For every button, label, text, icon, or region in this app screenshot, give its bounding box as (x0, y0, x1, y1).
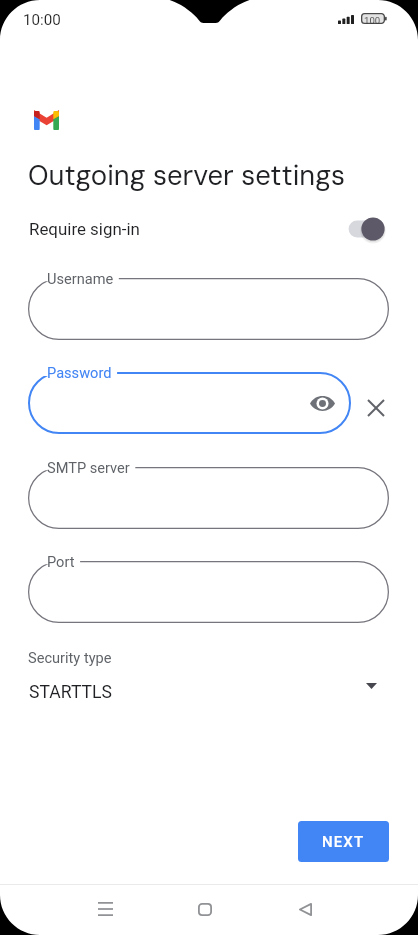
button[interactable]: Show password (307, 388, 337, 418)
staticText: Password (47, 364, 112, 381)
button[interactable]: NEXT (298, 821, 389, 862)
button[interactable]: SMTP server (28, 467, 389, 529)
button[interactable]: Require sign-in toggle (344, 213, 390, 245)
staticText: 10:00 (23, 11, 61, 29)
staticText: Username (47, 270, 114, 287)
button[interactable]: Password (28, 372, 351, 434)
button[interactable]: Port (28, 561, 389, 623)
staticText: Outgoing server settings (28, 158, 345, 194)
staticText: Security type (28, 649, 112, 666)
button[interactable]: Username (28, 278, 389, 340)
staticText: NEXT (322, 833, 365, 851)
staticText: STARTTLS (29, 682, 112, 703)
button[interactable]: Recent apps (81, 885, 129, 933)
button[interactable]: Require sign-in (20, 212, 340, 248)
staticText: Require sign-in (29, 219, 140, 239)
staticText: 100 (364, 15, 381, 26)
button[interactable]: Clear password (362, 394, 390, 422)
button[interactable]: Back (281, 885, 329, 933)
button[interactable]: STARTTLS (20, 675, 398, 705)
button[interactable]: Home (181, 885, 229, 933)
staticText: Port (47, 553, 75, 570)
staticText: SMTP server (47, 459, 130, 476)
